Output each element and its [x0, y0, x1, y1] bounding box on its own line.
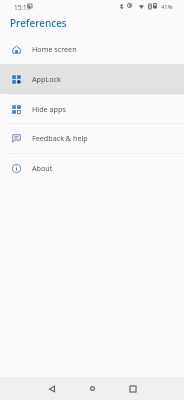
staticText: Home screen: [32, 44, 77, 54]
button[interactable]: Home: [76, 377, 108, 400]
staticText: AppLock: [32, 74, 61, 84]
button[interactable]: Home screen: [0, 34, 184, 64]
button[interactable]: Back: [36, 377, 68, 400]
button[interactable]: AppLock: [0, 64, 184, 94]
staticText: 41%: [161, 3, 173, 11]
staticText: Hide apps: [32, 104, 66, 114]
button[interactable]: Hide apps: [0, 94, 184, 124]
staticText: About: [32, 163, 53, 173]
button[interactable]: About: [0, 153, 184, 183]
button[interactable]: Feedback & help: [0, 123, 184, 153]
button[interactable]: Recents: [117, 377, 149, 400]
staticText: Feedback & help: [32, 133, 88, 143]
staticText: 15:19: [14, 3, 31, 12]
staticText: Preferences: [10, 16, 67, 30]
